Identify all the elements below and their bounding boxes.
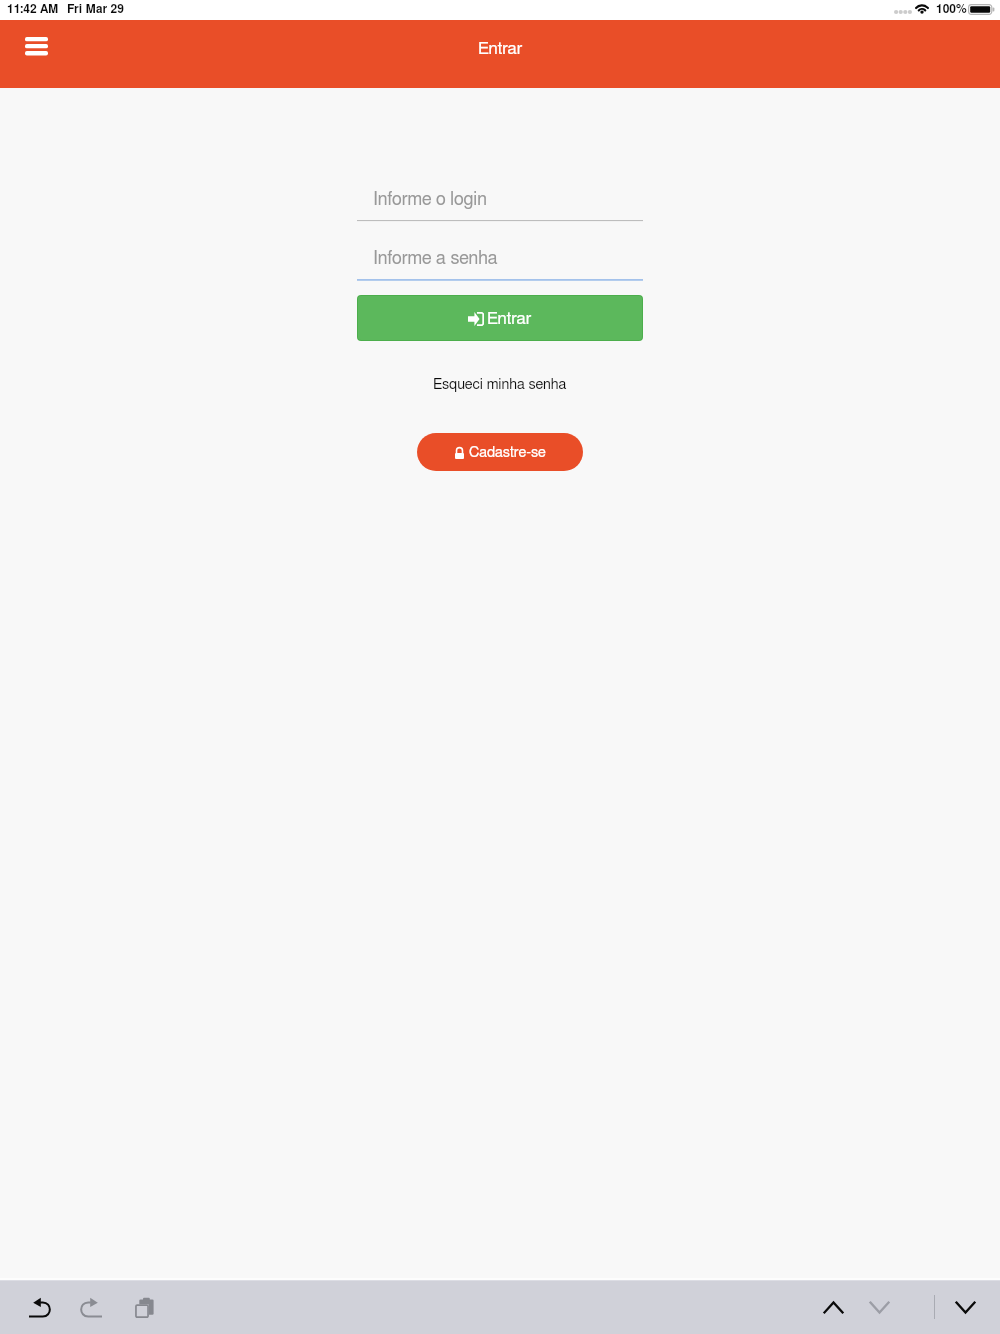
button[interactable]: Next field — [857, 1285, 901, 1329]
button[interactable]: Cadastre-se — [417, 433, 583, 471]
button[interactable]: Paste — [122, 1281, 166, 1325]
staticText: Esqueci minha senha — [433, 377, 567, 392]
staticText: Informe a senha — [373, 250, 498, 268]
button[interactable]: Informe a senha — [357, 239, 643, 281]
staticText: Informe o login — [373, 191, 487, 209]
staticText: Cadastre-se — [469, 445, 546, 460]
button[interactable]: Informe o login — [357, 180, 643, 222]
button[interactable]: Esqueci minha senha — [425, 373, 575, 396]
staticText: Entrar — [478, 40, 523, 57]
staticText: Fri Mar 29 — [67, 3, 124, 15]
button[interactable]: Undo — [17, 1285, 61, 1329]
staticText: 100% — [936, 3, 967, 15]
button[interactable]: Open navigation menu — [13, 23, 59, 69]
staticText: Entrar — [487, 310, 532, 327]
staticText: 11:42 AM — [7, 3, 59, 15]
button[interactable]: Redo — [69, 1285, 113, 1329]
button[interactable]: Entrar — [358, 296, 642, 340]
button[interactable]: Previous field — [811, 1285, 855, 1329]
button[interactable]: Hide keyboard — [943, 1285, 987, 1329]
